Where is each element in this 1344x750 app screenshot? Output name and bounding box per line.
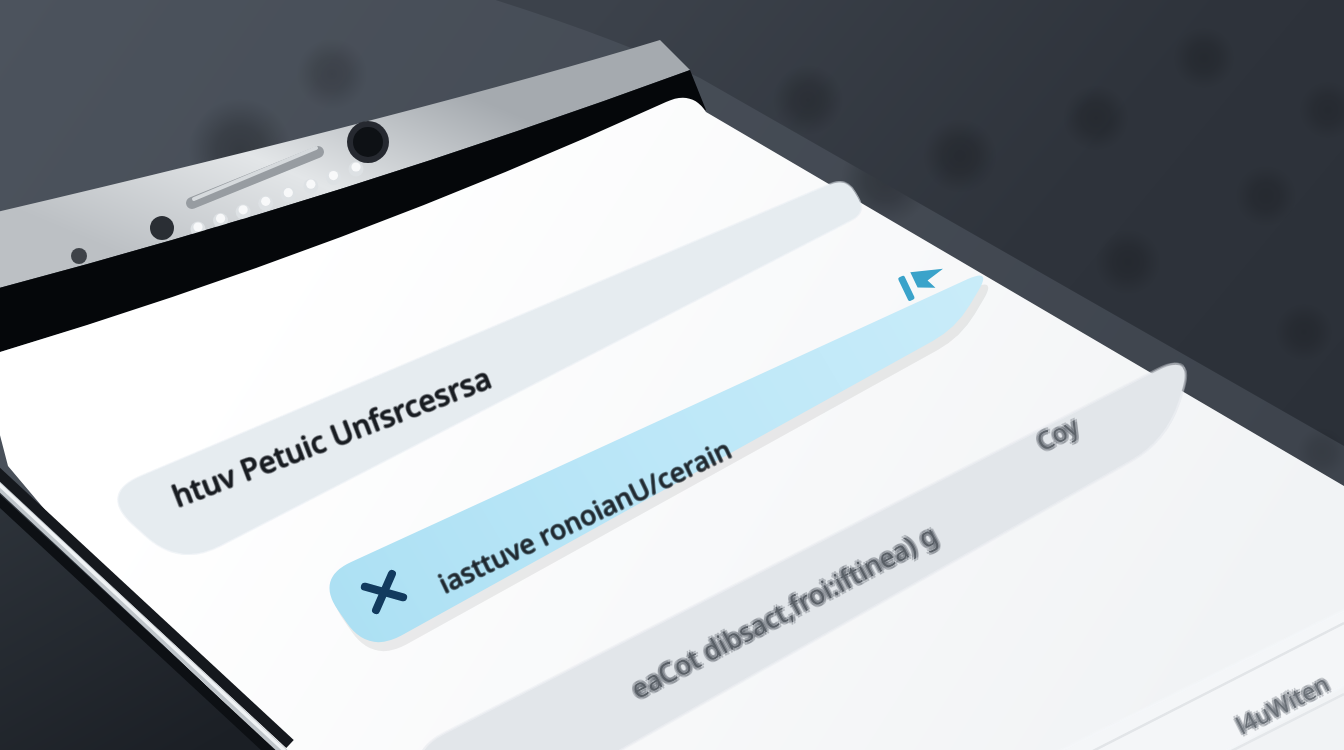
other: Mobile app list screen (0, 0, 1344, 750)
button[interactable] (0, 0, 1344, 750)
